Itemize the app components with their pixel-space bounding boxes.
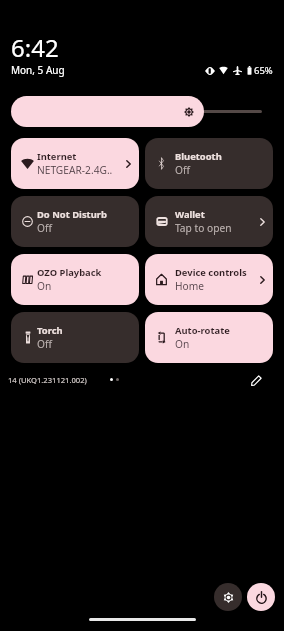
staticText: Do Not Disturb bbox=[37, 208, 107, 221]
button[interactable]: Auto-rotate bbox=[145, 312, 273, 363]
button[interactable]: Do Not Disturb bbox=[11, 196, 139, 247]
staticText: Wallet bbox=[175, 208, 205, 221]
button[interactable]: Settings bbox=[214, 583, 242, 611]
button[interactable]: Torch bbox=[11, 312, 139, 363]
button[interactable]: Wallet bbox=[145, 196, 273, 247]
staticText: Device controls bbox=[175, 266, 247, 279]
button[interactable]: Power bbox=[247, 583, 275, 611]
staticText: Off bbox=[175, 163, 190, 177]
staticText: NETGEAR-2.4G.. bbox=[37, 163, 113, 177]
staticText: Off bbox=[37, 337, 52, 351]
staticText: Home bbox=[175, 279, 204, 293]
button[interactable]: Internet bbox=[11, 138, 139, 189]
button[interactable]: Device controls bbox=[145, 254, 273, 305]
staticText: 6:42 bbox=[11, 31, 59, 64]
button[interactable]: OZO Playback bbox=[11, 254, 139, 305]
staticText: Auto-rotate bbox=[175, 324, 230, 337]
button[interactable] bbox=[11, 96, 204, 127]
staticText: On bbox=[37, 279, 52, 293]
staticText: Bluetooth bbox=[175, 150, 222, 163]
staticText: Off bbox=[37, 221, 52, 235]
staticText: 65% bbox=[254, 64, 273, 77]
staticText: Torch bbox=[37, 324, 63, 337]
staticText: Tap to open bbox=[175, 221, 232, 235]
staticText: OZO Playback bbox=[37, 266, 102, 279]
staticText: Internet bbox=[37, 150, 77, 163]
staticText: Mon, 5 Aug bbox=[11, 63, 65, 77]
staticText: 14 (UKQ1.231121.002) bbox=[8, 375, 87, 385]
staticText: On bbox=[175, 337, 190, 351]
button[interactable]: Bluetooth bbox=[145, 138, 273, 189]
button[interactable]: Edit bbox=[248, 372, 264, 388]
